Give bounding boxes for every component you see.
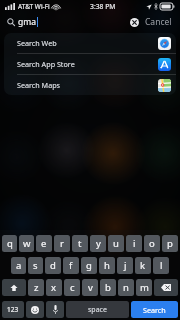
button[interactable]: s bbox=[28, 257, 43, 274]
staticText: s bbox=[33, 259, 38, 272]
button[interactable]: Search Web bbox=[4, 33, 176, 53]
button[interactable]: l bbox=[153, 257, 169, 274]
staticText: u bbox=[113, 237, 119, 250]
button[interactable]: Clear text bbox=[127, 15, 141, 29]
staticText: p bbox=[167, 237, 173, 250]
staticText: k bbox=[140, 259, 146, 272]
button[interactable]: Search Maps bbox=[4, 75, 176, 95]
staticText: gma bbox=[18, 16, 36, 28]
staticText: Search App Store bbox=[17, 59, 75, 69]
staticText: g bbox=[86, 259, 92, 272]
button[interactable]: v bbox=[82, 279, 98, 296]
staticText: r bbox=[60, 237, 64, 250]
staticText: q bbox=[7, 237, 13, 250]
button[interactable]: f bbox=[63, 257, 79, 274]
button[interactable]: i bbox=[126, 235, 142, 252]
button[interactable]: k bbox=[135, 257, 151, 274]
button[interactable]: g bbox=[81, 257, 97, 274]
button[interactable]: 123 bbox=[2, 301, 24, 318]
button[interactable]: Cancel bbox=[144, 16, 173, 28]
staticText: d bbox=[50, 259, 56, 272]
button[interactable]: u bbox=[108, 235, 124, 252]
staticText: space bbox=[88, 305, 107, 315]
button[interactable]: Search App Store bbox=[4, 54, 176, 74]
button[interactable]: space bbox=[66, 301, 129, 318]
button[interactable]: a bbox=[11, 257, 26, 274]
staticText: c bbox=[70, 281, 75, 294]
staticText: i bbox=[133, 237, 136, 250]
button[interactable]: o bbox=[144, 235, 160, 252]
button[interactable]: e bbox=[36, 235, 52, 252]
button[interactable]: z bbox=[28, 279, 44, 296]
button[interactable]: b bbox=[100, 279, 116, 296]
button[interactable]: d bbox=[45, 257, 61, 274]
staticText: AT&T Wi-Fi bbox=[18, 2, 50, 11]
button[interactable]: h bbox=[99, 257, 115, 274]
staticText: e bbox=[41, 237, 47, 250]
button[interactable]: Dictate bbox=[46, 301, 64, 318]
staticText: w bbox=[23, 237, 31, 250]
staticText: 123 bbox=[7, 305, 19, 314]
staticText: j bbox=[124, 259, 127, 272]
staticText: z bbox=[34, 281, 39, 294]
staticText: t bbox=[78, 237, 82, 250]
staticText: Search Maps bbox=[17, 80, 61, 90]
button[interactable]: Backspace bbox=[154, 279, 178, 296]
button[interactable]: x bbox=[46, 279, 62, 296]
button[interactable]: q bbox=[2, 235, 17, 252]
button[interactable]: j bbox=[117, 257, 133, 274]
staticText: Search Web bbox=[17, 38, 57, 48]
button[interactable]: Shift bbox=[2, 279, 26, 296]
staticText: a bbox=[16, 259, 22, 272]
staticText: 3:38 PM bbox=[90, 2, 116, 11]
staticText: x bbox=[51, 281, 57, 294]
staticText: y bbox=[96, 237, 101, 250]
button[interactable]: w bbox=[19, 235, 34, 252]
button[interactable]: n bbox=[118, 279, 134, 296]
staticText: Cancel bbox=[145, 16, 172, 28]
button[interactable]: y bbox=[90, 235, 106, 252]
staticText: l bbox=[160, 259, 163, 272]
staticText: v bbox=[88, 281, 93, 294]
staticText: m bbox=[140, 281, 149, 294]
button[interactable]: r bbox=[54, 235, 70, 252]
staticText: h bbox=[104, 259, 110, 272]
button[interactable]: t bbox=[72, 235, 88, 252]
button[interactable]: Emoji bbox=[26, 301, 44, 318]
button[interactable]: c bbox=[64, 279, 80, 296]
button[interactable]: m bbox=[136, 279, 152, 296]
button[interactable]: p bbox=[162, 235, 178, 252]
button[interactable]: Search bbox=[131, 301, 178, 318]
staticText: n bbox=[123, 281, 129, 294]
staticText: Search bbox=[143, 305, 166, 315]
staticText: o bbox=[149, 237, 155, 250]
staticText: b bbox=[105, 281, 111, 294]
staticText: f bbox=[69, 259, 73, 272]
